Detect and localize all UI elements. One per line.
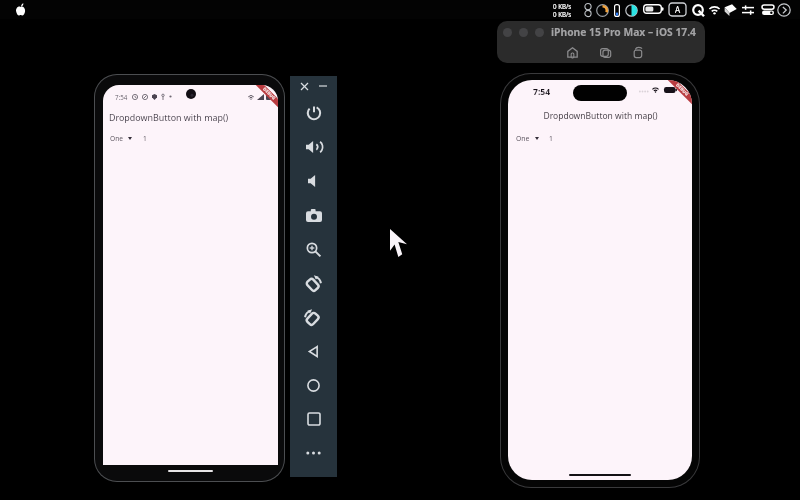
button[interactable]: Screenshot xyxy=(597,44,613,60)
button[interactable]: Overview xyxy=(290,402,337,436)
button[interactable]: Take screenshot xyxy=(290,198,337,232)
staticText: 7:54 xyxy=(533,86,551,98)
button[interactable]: Window control xyxy=(535,28,544,37)
staticText: DEBUG xyxy=(261,86,277,102)
staticText: DropdownButton with map() xyxy=(109,111,229,123)
button[interactable]: Rotate xyxy=(630,44,646,60)
staticText: One xyxy=(516,134,530,143)
button[interactable]: Volume down xyxy=(290,164,337,198)
button[interactable]: Minimize xyxy=(315,78,331,94)
button[interactable]: Window control xyxy=(519,28,528,37)
staticText: 7:54 xyxy=(115,93,128,101)
button[interactable]: Zoom xyxy=(290,232,337,266)
button[interactable]: Window control xyxy=(503,28,512,37)
staticText: One xyxy=(110,134,123,143)
staticText: DropdownButton with map() xyxy=(543,110,658,122)
button[interactable]: One xyxy=(106,130,136,147)
button[interactable]: Rotate right xyxy=(290,300,337,334)
staticText: 0 KB/s xyxy=(553,10,572,18)
staticText: 1 xyxy=(549,134,553,143)
button[interactable]: Volume up xyxy=(290,130,337,164)
button[interactable]: Home xyxy=(290,368,337,402)
button[interactable]: Close xyxy=(296,78,312,94)
button[interactable]: Rotate left xyxy=(290,266,337,300)
button[interactable]: Home xyxy=(564,44,580,60)
staticText: A xyxy=(675,4,681,15)
staticText: DEBUG xyxy=(674,82,690,98)
button[interactable]: Power xyxy=(290,96,337,130)
staticText: 1 xyxy=(143,134,147,143)
staticText: 0 KB/s xyxy=(553,2,572,10)
button[interactable]: More xyxy=(290,436,337,470)
button[interactable]: Back xyxy=(290,334,337,368)
staticText: iPhone 15 Pro Max – iOS 17.4 xyxy=(551,25,696,39)
button[interactable]: One xyxy=(512,130,543,147)
